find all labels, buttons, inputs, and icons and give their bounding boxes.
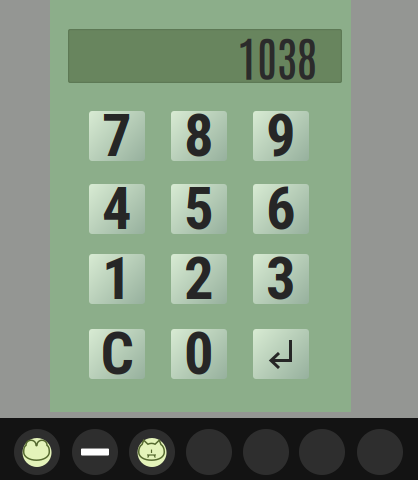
button[interactable]: Keyboard 5: [243, 429, 289, 475]
staticText: 0: [184, 320, 214, 388]
button[interactable]: 4: [89, 184, 145, 234]
button[interactable]: Keyboard 4: [186, 429, 232, 475]
staticText: 1038: [238, 26, 317, 86]
button[interactable]: Keyboard 7: [357, 429, 403, 475]
button[interactable]: 5: [171, 184, 227, 234]
button[interactable]: 8: [171, 111, 227, 161]
button[interactable]: 0: [171, 329, 227, 379]
button[interactable]: Frog keyboard: [14, 429, 60, 475]
button[interactable]: Cat keyboard: [129, 429, 175, 475]
staticText: 9: [266, 102, 296, 170]
button[interactable]: C: [89, 329, 145, 379]
button[interactable]: 9: [253, 111, 309, 161]
button[interactable]: Keyboard 6: [299, 429, 345, 475]
button[interactable]: 6: [253, 184, 309, 234]
button[interactable]: 3: [253, 254, 309, 304]
staticText: 5: [184, 175, 214, 243]
button[interactable]: Next keyboard: [72, 429, 118, 475]
staticText: C: [100, 320, 133, 388]
staticText: 6: [266, 175, 296, 243]
staticText: 7: [102, 102, 132, 170]
button[interactable]: Return: [253, 329, 309, 379]
staticText: 3: [266, 245, 296, 313]
staticText: 1: [102, 245, 132, 313]
button[interactable]: 1: [89, 254, 145, 304]
staticText: 2: [184, 245, 214, 313]
staticText: 4: [102, 175, 132, 243]
button[interactable]: 2: [171, 254, 227, 304]
button[interactable]: 7: [89, 111, 145, 161]
staticText: 8: [184, 102, 214, 170]
